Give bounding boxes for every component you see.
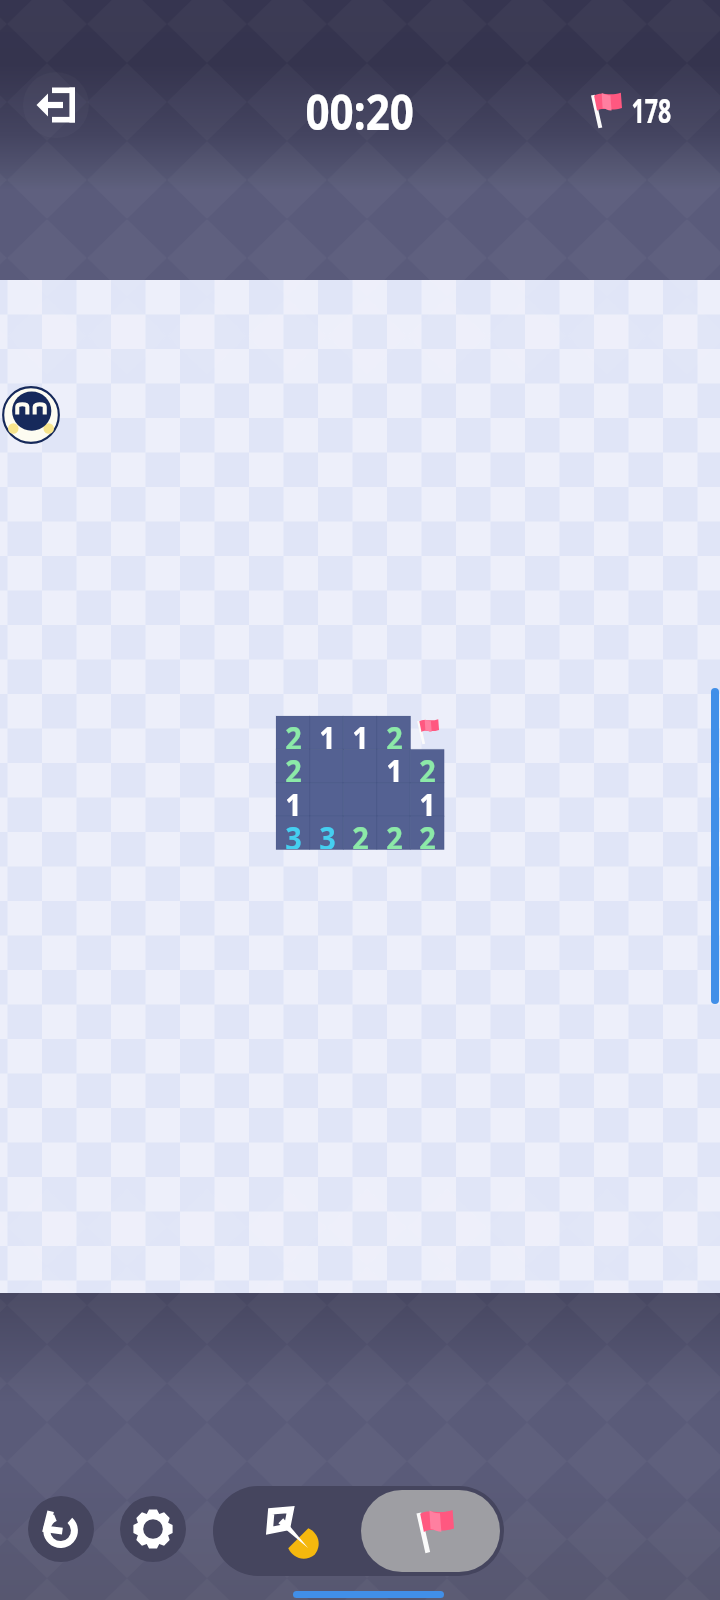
button[interactable]: 2: [377, 816, 411, 849]
button[interactable]: Undo: [28, 1496, 94, 1562]
button[interactable]: 1: [343, 716, 377, 749]
staticText: 2: [419, 749, 436, 782]
button[interactable]: 3: [276, 816, 310, 849]
button[interactable]: 1: [276, 783, 310, 816]
staticText: 2: [419, 816, 436, 849]
button[interactable]: 1: [310, 716, 344, 749]
staticText: 1: [386, 749, 403, 782]
button[interactable]: 2: [410, 749, 444, 782]
staticText: 2: [352, 816, 369, 849]
button[interactable]: 2: [343, 816, 377, 849]
button[interactable]: Settings: [120, 1496, 186, 1562]
button[interactable]: Exit game: [23, 72, 89, 138]
staticText: 1: [352, 716, 369, 749]
staticText: 178: [631, 87, 671, 133]
button[interactable]: 3: [310, 816, 344, 849]
button[interactable]: 2: [377, 716, 411, 749]
staticText: 3: [319, 816, 336, 849]
staticText: 1: [285, 783, 302, 816]
staticText: 00:20: [305, 79, 414, 144]
button[interactable]: 1: [377, 749, 411, 782]
staticText: 1: [419, 783, 436, 816]
button[interactable]: 2: [410, 816, 444, 849]
staticText: 1: [319, 716, 336, 749]
staticText: 2: [386, 816, 403, 849]
staticText: 2: [285, 716, 302, 749]
button[interactable]: 1: [410, 783, 444, 816]
button[interactable]: 2: [276, 749, 310, 782]
staticText: 2: [285, 749, 302, 782]
staticText: 3: [285, 816, 302, 849]
button[interactable]: Dig mode: [213, 1486, 361, 1576]
button[interactable]: Flag mode: [361, 1490, 500, 1572]
staticText: 2: [386, 716, 403, 749]
button[interactable]: 2: [276, 716, 310, 749]
